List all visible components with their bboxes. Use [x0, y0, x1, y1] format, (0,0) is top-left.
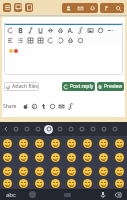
button[interactable]: WhatsApp: [48, 102, 57, 111]
button[interactable]: Emoji: [0, 150, 15, 164]
button[interactable]: Emoji: [63, 164, 79, 178]
button[interactable]: Emoji: [31, 136, 47, 150]
button[interactable]: Back: [1, 123, 10, 135]
staticText: Attach files: [12, 83, 38, 90]
button[interactable]: Mail: [74, 3, 86, 13]
button[interactable]: Bold: [15, 26, 25, 35]
button[interactable]: Emoji: [31, 178, 47, 189]
button[interactable]: Search: [112, 3, 124, 13]
button[interactable]: Emoji: [95, 150, 111, 164]
button[interactable]: Emoji: [95, 178, 111, 189]
button[interactable]: Bullet list: [15, 36, 25, 45]
button[interactable]: Emoji: [111, 178, 127, 189]
staticText: Preview: [104, 83, 123, 90]
button[interactable]: Pages: [25, 3, 33, 12]
button[interactable]: Emoji category 10: [109, 123, 120, 135]
button[interactable]: Microphone: [98, 190, 108, 200]
button[interactable]: More: [105, 26, 115, 35]
button[interactable]: Emoji: [15, 136, 31, 150]
button[interactable]: Highlight: [65, 36, 75, 45]
button[interactable]: Emoji: [63, 136, 79, 150]
button[interactable]: Image: [85, 26, 95, 35]
button[interactable]: Emoji category 9: [98, 123, 109, 135]
button[interactable]: Emoji: [63, 150, 79, 164]
button[interactable]: Undo: [45, 36, 55, 45]
button[interactable]: Tumblr: [39, 102, 48, 111]
button[interactable]: Emoji: [0, 164, 15, 178]
button[interactable]: Email: [57, 102, 66, 111]
button[interactable]: Emoji: [79, 136, 95, 150]
button[interactable]: Pinterest: [30, 102, 39, 111]
button[interactable]: Font size: [65, 26, 75, 35]
button[interactable]: Emoji: [31, 150, 47, 164]
button[interactable]: Emoji category 2: [21, 123, 32, 135]
button[interactable]: Reddit: [21, 102, 30, 111]
button[interactable]: Underline: [35, 26, 45, 35]
button[interactable]: Bookmarks: [100, 3, 112, 13]
button[interactable]: Emoji category 8: [87, 123, 98, 135]
button[interactable]: Emoji category 7: [76, 123, 87, 135]
button[interactable]: Notifications: [86, 3, 98, 13]
button[interactable]: Backspace: [113, 190, 123, 200]
button[interactable]: Space: [61, 190, 73, 200]
button[interactable]: Messages: [14, 3, 22, 12]
button[interactable]: Emoji: [111, 136, 127, 150]
button[interactable]: Emoji: [0, 178, 15, 189]
button[interactable]: Emoji: [15, 178, 31, 189]
button[interactable]: Settings: [29, 191, 36, 198]
button[interactable]: Profile: [62, 3, 74, 13]
button[interactable]: Emoji: [47, 136, 63, 150]
button[interactable]: Emoji category 5: [54, 123, 65, 135]
button[interactable]: Link: [75, 26, 85, 35]
button[interactable]: Emoji: [47, 178, 63, 189]
button[interactable]: Emoji: [79, 150, 95, 164]
button[interactable]: abc: [6, 191, 16, 199]
button[interactable]: Emoji: [15, 164, 31, 178]
button[interactable]: Emoji: [47, 150, 63, 164]
button[interactable]: Menu: [3, 3, 11, 12]
button[interactable]: Emoji: [0, 136, 15, 150]
button[interactable]: Emoji: [79, 178, 95, 189]
button[interactable]: Insert table: [35, 36, 45, 45]
button[interactable]: Text colour: [55, 26, 65, 35]
button[interactable]: Preview: [97, 82, 124, 91]
button[interactable]: Strikethrough: [45, 26, 55, 35]
button[interactable]: Emoji: [95, 26, 105, 35]
button[interactable]: Align: [5, 36, 15, 45]
button[interactable]: Emoji: [95, 164, 111, 178]
button[interactable]: Emoji: [31, 164, 47, 178]
button[interactable]: Emoji: [47, 164, 63, 178]
button[interactable]: Emoji: [95, 136, 111, 150]
button[interactable]: Emoji category 6: [65, 123, 76, 135]
button[interactable]: Emoji: [15, 150, 31, 164]
button[interactable]: Emoji category 1: [10, 123, 21, 135]
button[interactable]: Emoji: [111, 150, 127, 164]
button[interactable]: Table: [25, 36, 35, 45]
button[interactable]: Settings: [75, 36, 85, 45]
button[interactable]: Attach files: [4, 82, 39, 91]
button[interactable]: Undo: [5, 26, 15, 35]
staticText: Share: [3, 103, 17, 110]
staticText: abc: [6, 191, 16, 199]
button[interactable]: Emoji category 4: [43, 123, 54, 135]
button[interactable]: Post reply: [62, 82, 95, 91]
button[interactable]: Emoji: [111, 164, 127, 178]
button[interactable]: Emoji: [79, 164, 95, 178]
button[interactable]: Emoji category 3: [32, 123, 43, 135]
button[interactable]: Italic: [25, 26, 35, 35]
staticText: Post reply: [70, 83, 94, 90]
button[interactable]: Redo: [55, 36, 65, 45]
button[interactable]: Copy link: [66, 102, 75, 111]
button[interactable]: Emoji: [63, 178, 79, 189]
